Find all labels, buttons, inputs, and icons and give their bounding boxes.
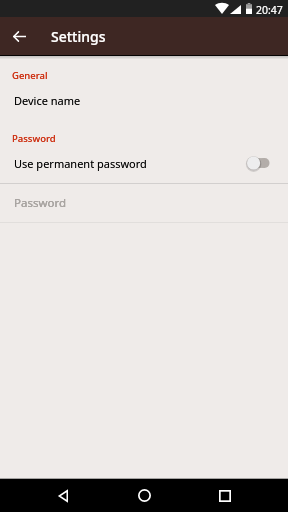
staticText: Settings: [51, 27, 106, 46]
staticText: Password: [14, 195, 67, 211]
button[interactable]: Password: [0, 184, 288, 222]
staticText: Password: [12, 132, 56, 143]
staticText: Device name: [14, 93, 81, 108]
button[interactable]: Recent apps: [201, 479, 249, 512]
button[interactable]: Use permanent password: [0, 152, 288, 174]
button[interactable]: Back: [39, 479, 87, 512]
staticText: 20:47: [256, 3, 283, 17]
staticText: Use permanent password: [14, 156, 147, 171]
staticText: Password: [12, 132, 56, 143]
staticText: Device name: [14, 93, 81, 108]
staticText: Use permanent password: [14, 156, 147, 171]
button[interactable]: Navigate up: [0, 17, 38, 55]
button[interactable]: Home: [120, 479, 168, 512]
staticText: General: [12, 69, 48, 80]
staticText: General: [12, 69, 48, 80]
staticText: Password: [14, 195, 67, 211]
button[interactable]: Device name: [0, 89, 288, 111]
